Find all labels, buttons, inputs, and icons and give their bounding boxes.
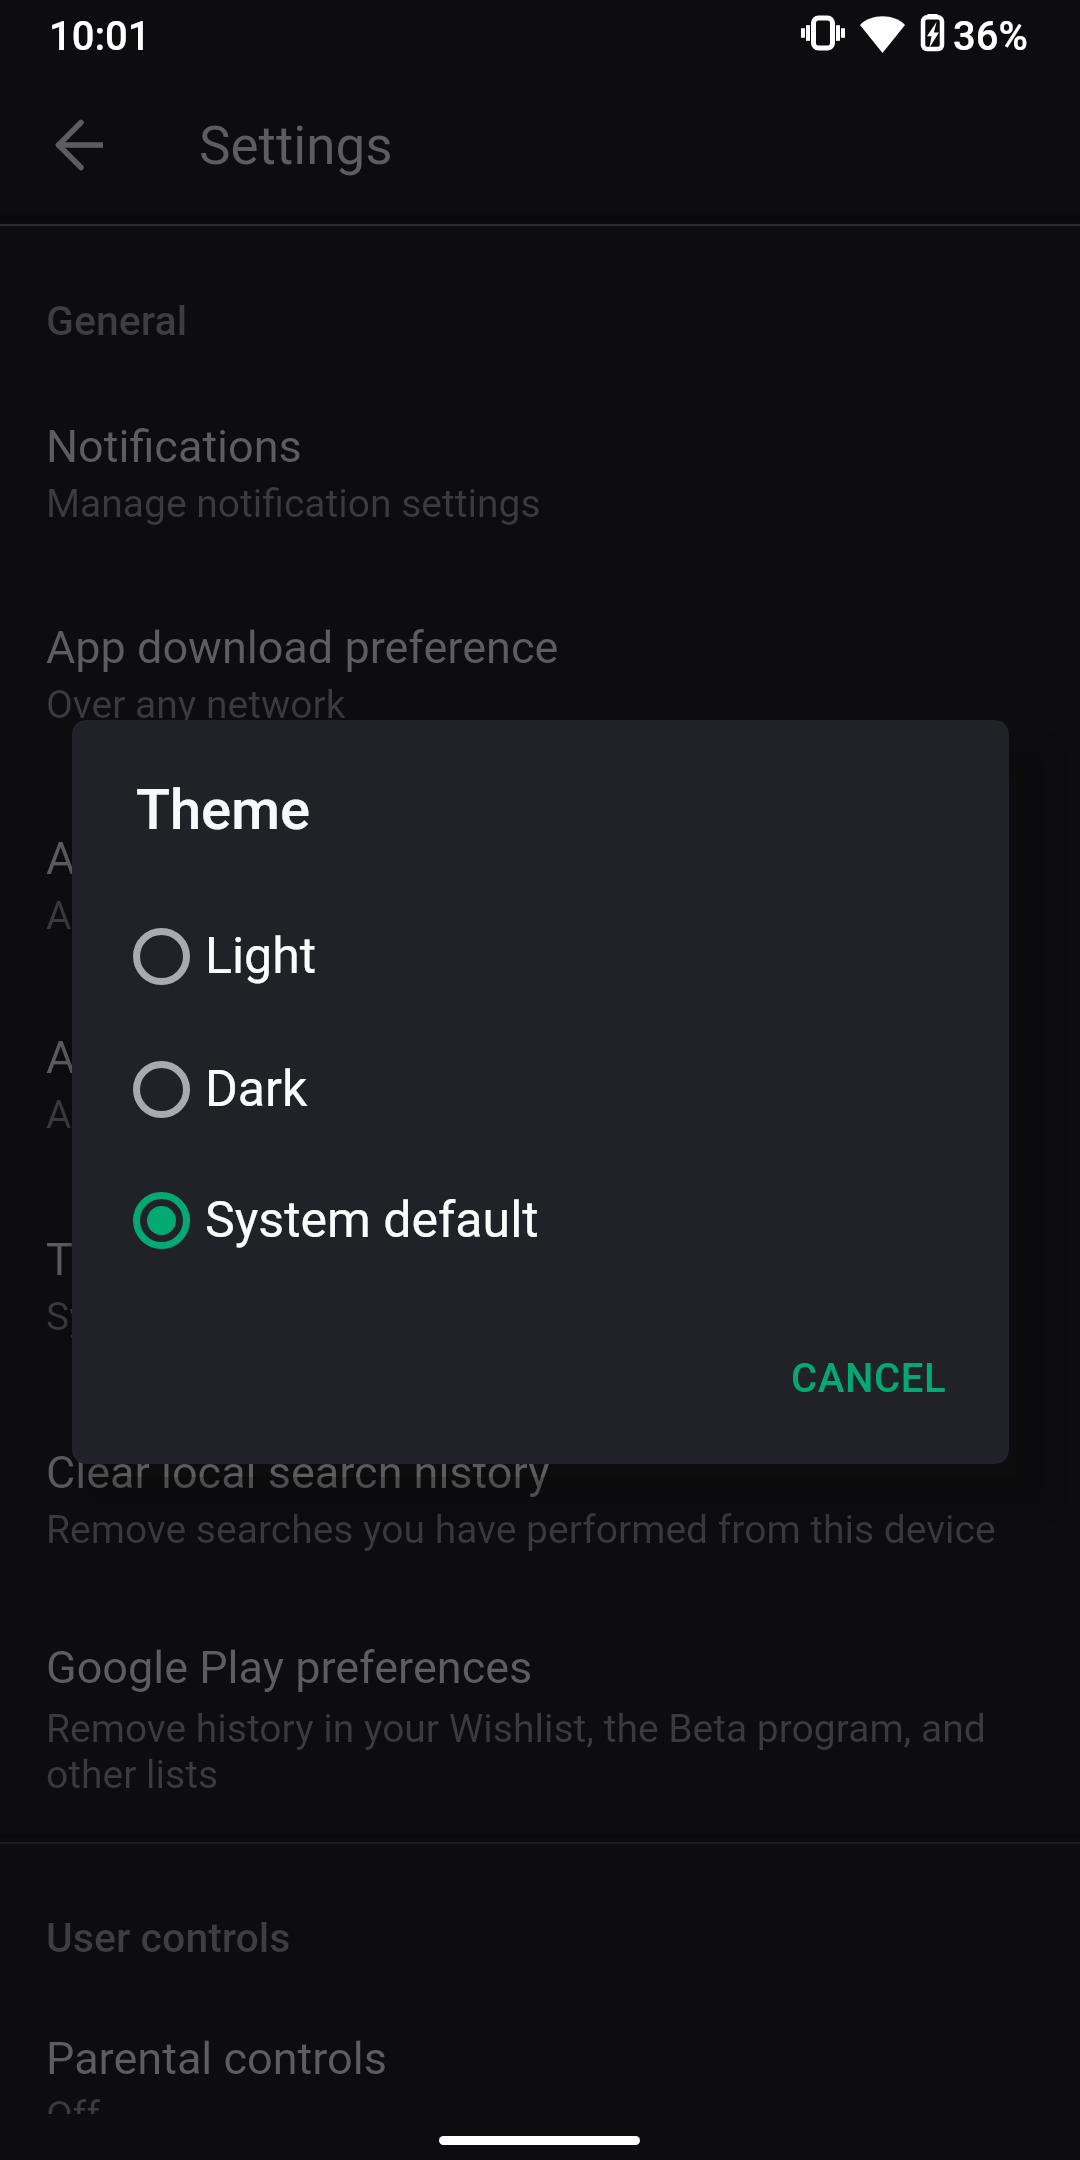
button[interactable] — [0, 1416, 1080, 1612]
staticText: Dark — [205, 1060, 308, 1119]
staticText: Light — [205, 927, 317, 986]
button[interactable] — [0, 800, 1080, 1000]
staticText: 10:01 — [49, 13, 151, 60]
staticText: General — [46, 297, 188, 345]
staticText: Clear local search history — [46, 1446, 550, 1499]
staticText: Manage notification settings — [46, 481, 541, 527]
staticText: Off — [46, 2093, 100, 2139]
button[interactable]: Dark — [72, 1023, 1009, 1155]
staticText: Auto-update apps over Wi-Fi only — [46, 893, 615, 939]
staticText: Remove history in your Wishlist, the Bet… — [46, 1706, 1036, 1798]
staticText: App download preference — [46, 621, 559, 674]
button[interactable] — [0, 392, 1080, 592]
staticText: System default — [46, 1294, 307, 1340]
button[interactable]: Back — [25, 91, 133, 199]
staticText: Theme — [46, 1233, 185, 1286]
staticText: 36% — [953, 13, 1028, 60]
staticText: Over any network — [46, 682, 346, 728]
button[interactable] — [0, 1612, 1080, 1824]
staticText: Google Play preferences — [46, 1641, 533, 1694]
staticText: System default — [205, 1191, 539, 1250]
staticText: User controls — [46, 1914, 291, 1962]
button[interactable]: Light — [72, 890, 1009, 1022]
button[interactable]: System default — [72, 1154, 1009, 1286]
staticText: Auto-play videos — [46, 1031, 376, 1084]
staticText: Auto-play videos over Wi-Fi only — [46, 1092, 594, 1138]
button[interactable] — [0, 1200, 1080, 1400]
staticText: Theme — [136, 777, 310, 843]
button[interactable] — [0, 592, 1080, 792]
staticText: Notifications — [46, 420, 302, 473]
staticText: Remove searches you have performed from … — [46, 1507, 996, 1553]
button[interactable] — [0, 2000, 1080, 2114]
staticText: Auto-update apps — [46, 832, 401, 885]
staticText: CANCEL — [791, 1355, 947, 1402]
button[interactable] — [0, 1000, 1080, 1200]
staticText: Settings — [199, 115, 393, 177]
button[interactable]: CANCEL — [769, 1330, 969, 1426]
staticText: Parental controls — [46, 2032, 387, 2085]
